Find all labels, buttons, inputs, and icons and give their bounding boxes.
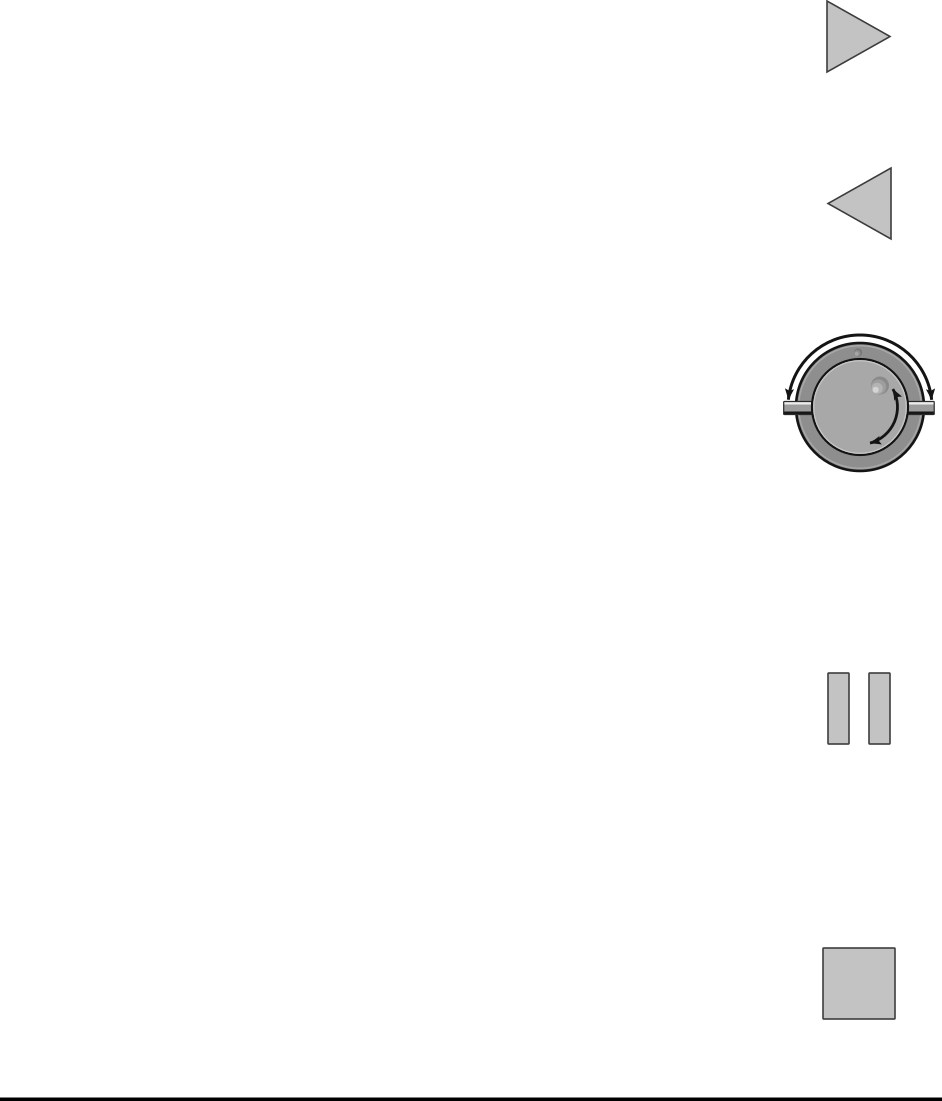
button[interactable]: Turn the Digital Crown xyxy=(760,307,942,507)
button[interactable]: Rewind xyxy=(828,168,891,239)
button[interactable]: Play xyxy=(827,1,890,72)
button[interactable]: Stop xyxy=(823,948,895,1019)
button[interactable]: Pause xyxy=(828,673,890,744)
